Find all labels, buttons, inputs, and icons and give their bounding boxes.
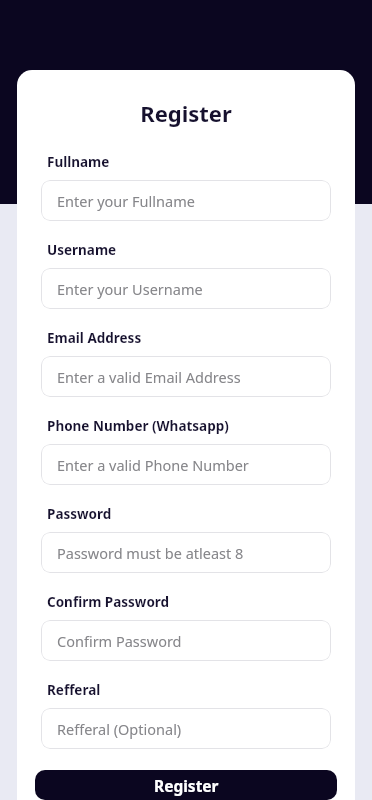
button[interactable]: Enter your Fullname [41,180,331,221]
staticText: Refferal [47,681,101,699]
staticText: Enter your Username [57,279,203,299]
staticText: Phone Number (Whatsapp) [47,417,229,435]
staticText: Confirm Password [47,593,170,611]
staticText: Fullname [47,153,110,171]
staticText: Enter a valid Phone Number [57,455,249,475]
staticText: Password [47,505,112,523]
staticText: Enter a valid Email Address [57,367,241,387]
button[interactable]: Enter your Username [41,268,331,309]
button[interactable]: Password must be atleast 8 [41,532,331,573]
button[interactable]: Refferal (Optional) [41,708,331,749]
button[interactable]: Enter a valid Phone Number [41,444,331,485]
button[interactable]: Enter a valid Email Address [41,356,331,397]
staticText: Register [17,98,355,128]
staticText: Email Address [47,329,142,347]
staticText: Username [47,241,117,259]
staticText: Register [154,775,219,796]
button[interactable]: Confirm Password [41,620,331,661]
staticText: Refferal (Optional) [57,719,182,739]
staticText: Enter your Fullname [57,191,195,211]
staticText: Password must be atleast 8 [57,543,244,563]
button[interactable]: Register [35,770,337,800]
staticText: Confirm Password [57,631,182,651]
